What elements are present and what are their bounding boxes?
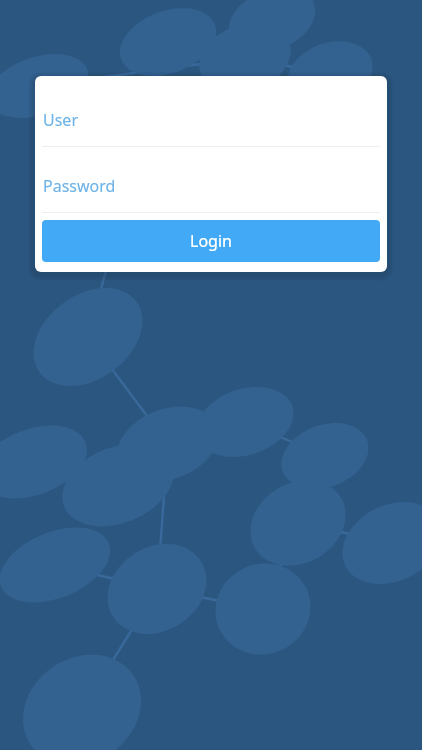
button[interactable]: Login xyxy=(42,220,380,262)
staticText: User xyxy=(43,109,78,131)
button[interactable]: Password xyxy=(35,147,387,213)
staticText: Login xyxy=(190,230,232,252)
staticText: Password xyxy=(43,175,116,197)
button[interactable]: User xyxy=(35,76,387,147)
